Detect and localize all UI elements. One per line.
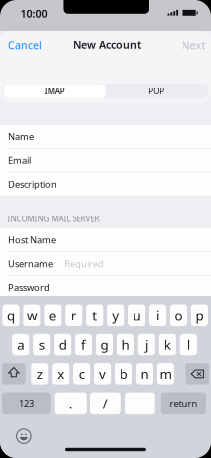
button[interactable]: l [180, 334, 197, 355]
staticText: s [39, 336, 45, 353]
button[interactable]: o [170, 304, 187, 326]
button[interactable] [125, 393, 155, 414]
staticText: INCOMING MAIL SERVER [7, 213, 99, 224]
staticText: x [57, 365, 64, 383]
button[interactable]: t [86, 304, 103, 326]
button[interactable]: g [96, 334, 113, 355]
button[interactable]: Name [0, 125, 211, 148]
staticText: return [169, 397, 197, 410]
staticText: Next [181, 38, 205, 52]
button[interactable]: IMAP [4, 84, 105, 97]
button[interactable]: j [138, 334, 155, 355]
staticText: POP [148, 86, 164, 96]
staticText: Email [8, 154, 31, 166]
staticText: d [59, 336, 67, 353]
button[interactable]: POP [105, 84, 207, 97]
staticText: . [69, 394, 73, 412]
staticText: h [121, 336, 129, 353]
staticText: o [174, 306, 182, 324]
button[interactable]: u [128, 304, 145, 326]
staticText: f [81, 336, 86, 353]
staticText: 10:00 [20, 6, 47, 21]
staticText: b [119, 365, 127, 383]
button[interactable]: y [107, 304, 124, 326]
button[interactable]: s [33, 334, 50, 355]
button[interactable]: i [149, 304, 166, 326]
staticText: i [156, 306, 159, 324]
button[interactable]: Description [0, 172, 211, 196]
staticText: p [195, 306, 203, 324]
button[interactable]: v [94, 363, 111, 385]
button[interactable]: c [73, 363, 90, 385]
button[interactable]: r [65, 304, 82, 326]
staticText: j [145, 336, 148, 353]
button[interactable]: f [75, 334, 92, 355]
button[interactable]: z [31, 363, 48, 385]
button[interactable]: Password [0, 276, 211, 299]
staticText: a [17, 336, 24, 353]
staticText: w [27, 306, 37, 324]
staticText: e [49, 306, 57, 324]
button[interactable]: Next [178, 35, 208, 55]
button[interactable]: a [12, 334, 29, 355]
button[interactable]: Cancel [5, 35, 45, 55]
staticText: y [112, 306, 119, 324]
staticText: 123 [19, 397, 34, 410]
button[interactable]: w [23, 304, 40, 326]
staticText: z [37, 365, 43, 383]
staticText: Host Name [8, 233, 56, 246]
staticText: r [71, 306, 77, 324]
button[interactable]: Host Name [0, 228, 211, 251]
button[interactable]: / [90, 393, 121, 414]
button[interactable]: e [44, 304, 61, 326]
staticText: Name [8, 130, 34, 143]
button[interactable]: Shift [2, 363, 26, 385]
button[interactable]: Email [0, 149, 211, 172]
staticText: k [164, 336, 171, 353]
button[interactable]: k [159, 334, 176, 355]
staticText: Description [8, 178, 57, 190]
staticText: IMAP [45, 86, 65, 96]
staticText: Required [64, 257, 104, 270]
staticText: Username [8, 257, 53, 270]
button[interactable]: m [157, 363, 174, 385]
staticText: m [159, 365, 171, 383]
staticText: Password [8, 281, 50, 294]
staticText: v [99, 365, 106, 383]
button[interactable]: n [136, 363, 153, 385]
button[interactable]: x [52, 363, 69, 385]
button[interactable]: b [115, 363, 132, 385]
button[interactable]: return [161, 393, 206, 414]
staticText: u [133, 306, 141, 324]
staticText: g [100, 336, 108, 353]
staticText: n [140, 365, 148, 383]
button[interactable]: Emoji keyboard [14, 426, 34, 446]
button[interactable]: p [191, 304, 208, 326]
staticText: q [7, 306, 15, 324]
staticText: New Account [73, 37, 141, 52]
button[interactable]: d [54, 334, 71, 355]
button[interactable]: Username [0, 252, 211, 275]
staticText: Cancel [8, 38, 42, 52]
staticText: t [92, 306, 97, 324]
button[interactable]: q [2, 304, 19, 326]
staticText: l [187, 336, 190, 353]
button[interactable]: . [55, 393, 87, 414]
staticText: / [103, 394, 108, 412]
button[interactable]: h [117, 334, 134, 355]
button[interactable]: Delete [185, 363, 209, 385]
button[interactable]: 123 [2, 393, 51, 414]
staticText: c [79, 365, 85, 383]
